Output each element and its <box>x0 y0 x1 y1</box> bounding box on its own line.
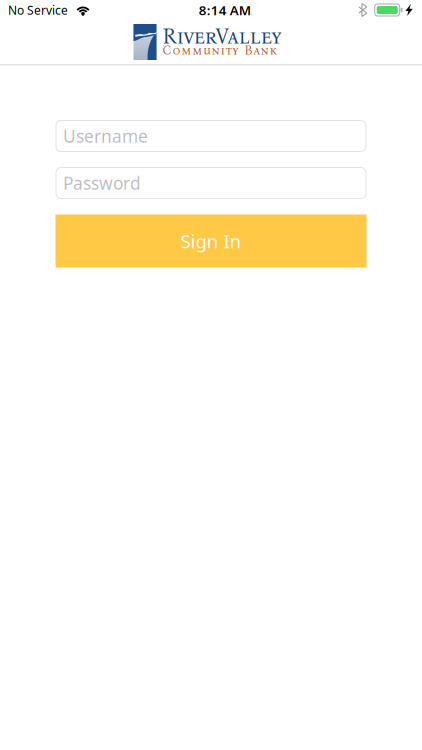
staticText: Username <box>63 124 148 147</box>
staticText: 8:14 AM <box>199 1 251 19</box>
button[interactable]: Sign In <box>55 214 366 267</box>
staticText: RiverValley <box>162 24 281 49</box>
staticText: No Service <box>8 2 68 18</box>
staticText: Sign In <box>180 229 241 253</box>
staticText: Community Bank <box>162 43 276 58</box>
button[interactable]: Password <box>56 167 366 198</box>
staticText: Password <box>63 171 141 194</box>
button[interactable]: Username <box>56 120 366 151</box>
